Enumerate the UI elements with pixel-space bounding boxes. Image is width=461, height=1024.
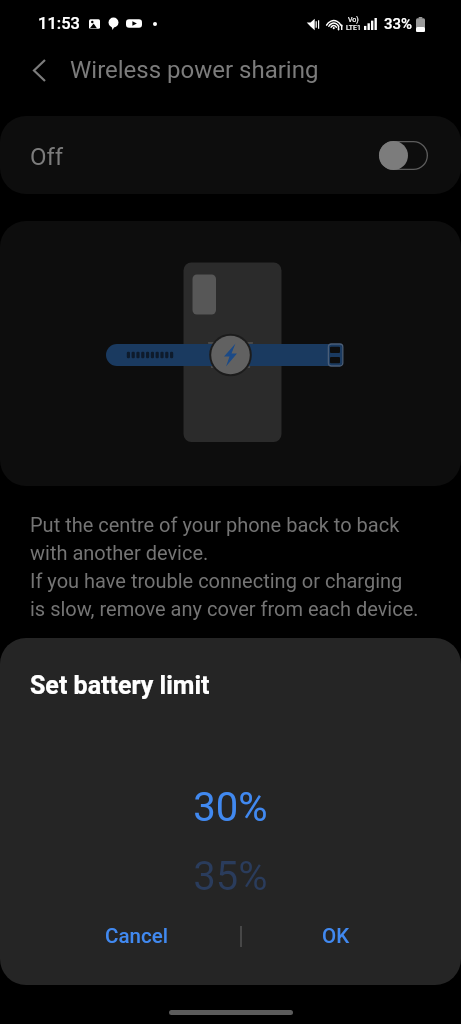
staticText: Cancel xyxy=(105,924,168,948)
staticText: 11:53 xyxy=(38,14,80,33)
button[interactable]: Cancel xyxy=(66,914,206,958)
staticText: is slow, remove any cover from each devi… xyxy=(30,597,419,620)
staticText: OK xyxy=(322,924,350,948)
button[interactable]: Back xyxy=(15,46,63,94)
button[interactable]: OK xyxy=(266,914,406,958)
staticText: Set battery limit xyxy=(30,671,210,700)
button[interactable]: Off xyxy=(0,116,461,194)
staticText: Off xyxy=(30,143,64,171)
staticText: LTE1 xyxy=(346,24,361,32)
staticText: Put the centre of your phone back to bac… xyxy=(30,513,400,536)
staticText: 30% xyxy=(193,784,268,829)
staticText: with another device. xyxy=(30,541,209,564)
button[interactable]: 30% xyxy=(0,784,461,829)
staticText: Vo) xyxy=(348,16,359,24)
staticText: Wireless power sharing xyxy=(70,56,319,84)
button[interactable]: 35% xyxy=(0,853,461,898)
staticText: 35% xyxy=(193,853,268,898)
staticText: If you have trouble connecting or chargi… xyxy=(30,569,403,592)
staticText: 33% xyxy=(384,15,413,33)
